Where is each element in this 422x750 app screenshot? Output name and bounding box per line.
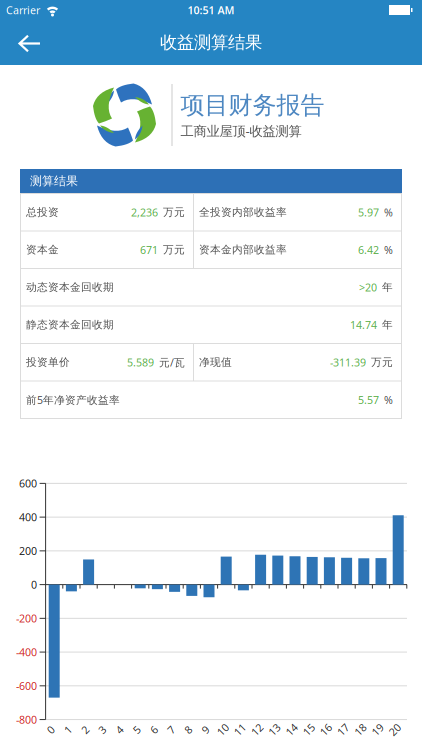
staticText: -600 [16, 679, 37, 693]
staticText: 万元 [371, 356, 393, 369]
staticText: 18 [354, 722, 366, 737]
staticText: 2 [82, 722, 88, 737]
staticText: 万元 [163, 206, 185, 219]
staticText: 1 [65, 722, 71, 737]
staticText: 9 [202, 722, 208, 737]
staticText: 13 [268, 722, 280, 737]
staticText: 投资单价 [26, 356, 70, 369]
staticText: 19 [371, 722, 383, 737]
staticText: 10 [217, 722, 229, 737]
staticText: 200 [19, 544, 37, 558]
staticText: -400 [16, 645, 37, 659]
staticText: % [384, 393, 393, 407]
staticText: 15 [303, 722, 315, 737]
staticText: 万元 [163, 243, 185, 256]
staticText: 5.97 [358, 205, 379, 219]
staticText: 16 [320, 722, 332, 737]
staticText: 总投资 [26, 206, 59, 219]
staticText: >20 [359, 280, 377, 294]
staticText: 5.57 [358, 393, 379, 407]
staticText: 8 [185, 722, 191, 737]
staticText: % [384, 243, 393, 257]
staticText: 资本金内部收益率 [199, 243, 287, 256]
staticText: 全投资内部收益率 [199, 206, 287, 219]
staticText: 3 [99, 722, 105, 737]
staticText: 测算结果 [30, 174, 78, 188]
staticText: 收益测算结果 [160, 32, 262, 53]
staticText: -200 [16, 611, 37, 625]
staticText: 资本金 [26, 243, 59, 256]
staticText: 7 [168, 722, 174, 737]
staticText: 5 [134, 722, 140, 737]
staticText: 11 [234, 722, 246, 737]
staticText: 前5年净资产收益率 [26, 393, 120, 407]
staticText: 动态资本金回收期 [26, 281, 114, 294]
staticText: 5.589 [127, 355, 154, 369]
staticText: 12 [251, 722, 263, 737]
button[interactable]: Back [0, 32, 41, 52]
staticText: Carrier [6, 3, 40, 17]
staticText: 年 [382, 281, 393, 294]
staticText: 14.74 [350, 318, 377, 332]
staticText: 静态资本金回收期 [26, 318, 114, 331]
staticText: 6.42 [358, 243, 379, 257]
staticText: 0 [48, 722, 54, 737]
staticText: 14 [285, 722, 297, 737]
staticText: 4 [116, 722, 122, 737]
staticText: 工商业屋顶-收益测算 [180, 122, 301, 140]
staticText: 17 [337, 722, 349, 737]
staticText: 10:51 AM [187, 3, 234, 17]
staticText: 年 [382, 318, 393, 331]
staticText: 项目财务报告 [180, 90, 324, 120]
staticText: 671 [140, 243, 158, 257]
staticText: 20 [389, 722, 401, 737]
staticText: -311.39 [330, 355, 366, 369]
staticText: 6 [151, 722, 157, 737]
staticText: 400 [19, 510, 37, 524]
staticText: 0 [31, 577, 37, 592]
staticText: % [384, 205, 393, 219]
staticText: 2,236 [131, 205, 158, 219]
staticText: -800 [16, 712, 37, 727]
staticText: 净现值 [199, 356, 232, 369]
staticText: 600 [19, 476, 37, 490]
staticText: 元/瓦 [159, 355, 185, 369]
